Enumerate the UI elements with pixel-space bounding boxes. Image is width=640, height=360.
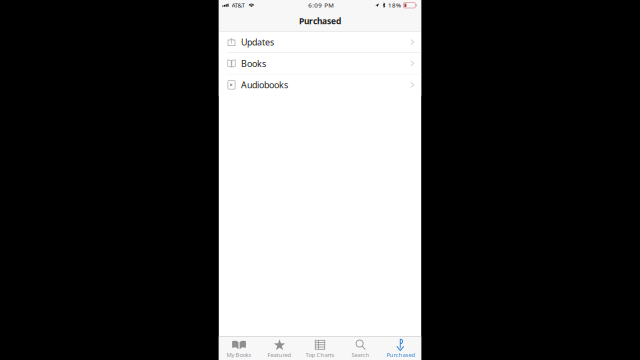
staticText: Purchased xyxy=(386,351,415,359)
button[interactable]: Updates xyxy=(219,32,421,53)
staticText: 18% xyxy=(388,1,401,9)
staticText: Search xyxy=(351,351,369,359)
button[interactable]: Top Charts xyxy=(300,336,340,360)
button[interactable]: Featured xyxy=(259,336,300,360)
button[interactable]: My Books xyxy=(219,336,259,360)
staticText: 6:09 PM xyxy=(308,1,334,9)
button[interactable]: Search xyxy=(340,336,381,360)
staticText: Top Charts xyxy=(305,351,334,359)
button[interactable]: Purchased xyxy=(381,336,421,360)
staticText: Purchased xyxy=(299,15,341,27)
staticText: Featured xyxy=(267,351,291,359)
staticText: Updates xyxy=(241,36,274,48)
staticText: Books xyxy=(241,57,266,69)
staticText: Audiobooks xyxy=(241,79,288,91)
staticText: My Books xyxy=(226,351,251,359)
staticText: AT&T xyxy=(232,1,245,9)
button[interactable]: Books xyxy=(219,53,421,74)
button[interactable]: Audiobooks xyxy=(219,74,421,96)
